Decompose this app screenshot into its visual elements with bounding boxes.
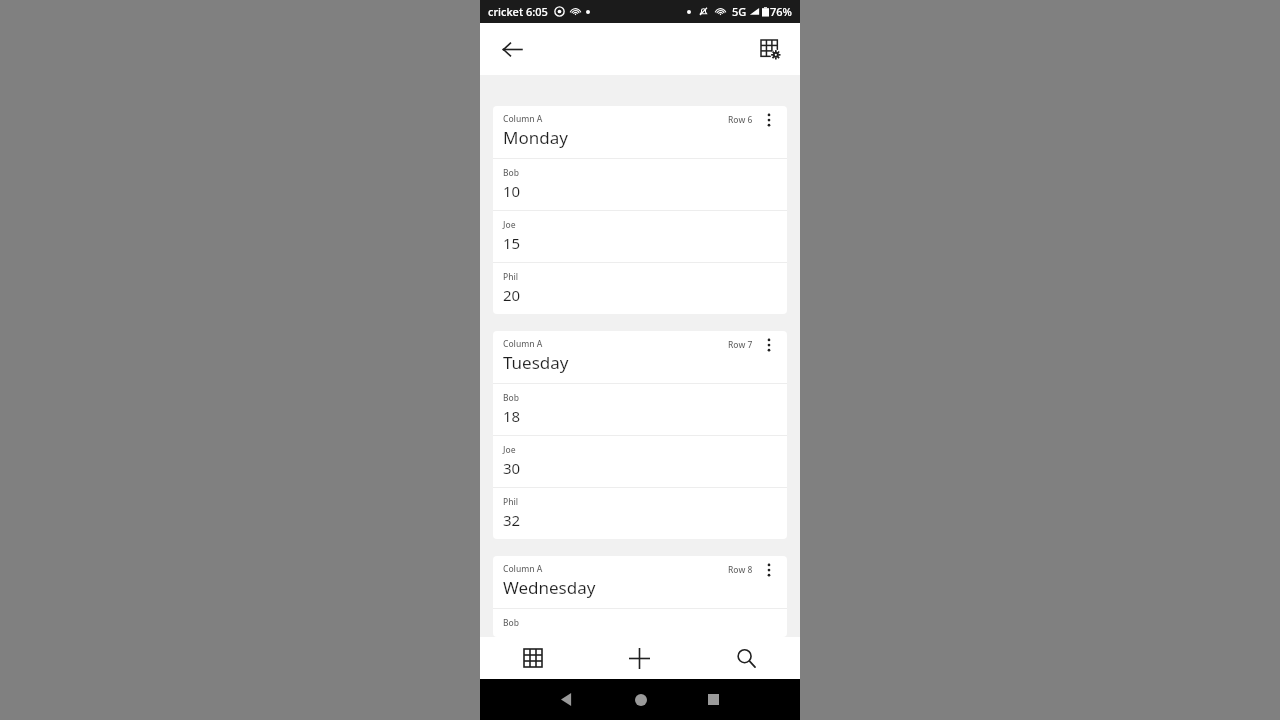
staticText: Row 8 xyxy=(728,564,753,576)
button[interactable]: Column A xyxy=(493,556,787,637)
button[interactable]: More options xyxy=(759,113,779,137)
staticText: Row 7 xyxy=(728,339,753,351)
staticText: Bob xyxy=(503,167,520,179)
button[interactable]: Bob xyxy=(493,384,787,435)
staticText: cricket 6:05 xyxy=(488,4,548,19)
staticText: Joe xyxy=(503,219,516,231)
button[interactable]: More options xyxy=(759,563,779,587)
staticText: 15 xyxy=(503,233,521,253)
button[interactable]: Add xyxy=(586,637,693,679)
staticText: 32 xyxy=(503,510,521,530)
staticText: Joe xyxy=(503,444,516,456)
button[interactable]: Bob xyxy=(493,159,787,210)
staticText: Bob xyxy=(503,392,520,404)
staticText: Column A xyxy=(503,113,543,125)
staticText: 76% xyxy=(770,4,792,19)
button[interactable]: Bob xyxy=(493,609,787,637)
staticText: 30 xyxy=(503,458,521,478)
staticText: Bob xyxy=(503,617,520,629)
button[interactable]: Joe xyxy=(493,436,787,487)
button[interactable]: Joe xyxy=(493,211,787,262)
staticText: Column A xyxy=(503,338,543,350)
button[interactable]: Column A xyxy=(493,106,787,314)
button[interactable]: Back xyxy=(530,679,604,720)
button[interactable]: Search xyxy=(693,637,800,679)
staticText: 10 xyxy=(503,181,521,201)
staticText: Phil xyxy=(503,496,519,508)
button[interactable]: Grid view xyxy=(480,637,586,679)
button[interactable]: Phil xyxy=(493,488,787,539)
staticText: Row 6 xyxy=(728,114,753,126)
button[interactable]: Column A xyxy=(493,331,787,539)
button[interactable]: Phil xyxy=(493,263,787,314)
button[interactable]: Table settings xyxy=(750,29,790,69)
staticText: Column A xyxy=(503,563,543,575)
button[interactable]: More options xyxy=(759,338,779,362)
staticText: 20 xyxy=(503,285,521,305)
staticText: 5G xyxy=(732,4,747,19)
button[interactable]: Home xyxy=(604,679,677,720)
staticText: Wednesday xyxy=(503,576,596,599)
staticText: Monday xyxy=(503,126,568,149)
staticText: Phil xyxy=(503,271,519,283)
staticText: 18 xyxy=(503,406,521,426)
button[interactable]: Recent apps xyxy=(677,679,750,720)
button[interactable]: Back xyxy=(492,29,532,69)
staticText: Tuesday xyxy=(503,351,569,374)
